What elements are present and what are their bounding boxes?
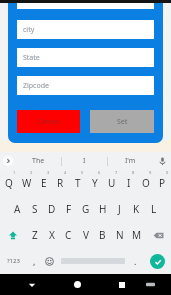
button[interactable]: C [60, 222, 77, 248]
staticText: M [132, 228, 142, 242]
staticText: 0 [166, 170, 169, 175]
staticText: 8 [132, 170, 135, 175]
staticText: O [142, 176, 150, 190]
staticText: 9 [149, 170, 152, 175]
button[interactable]: A [9, 196, 26, 222]
staticText: L [151, 202, 157, 216]
button[interactable]: 7 [103, 170, 120, 196]
staticText: V [83, 228, 89, 242]
staticText: 6 [98, 170, 101, 175]
staticText: B [99, 228, 106, 242]
button[interactable]: Zipcode [17, 76, 154, 95]
button[interactable]: 2 [18, 170, 35, 196]
button[interactable]: State [17, 48, 154, 67]
button[interactable]: 1 [0, 170, 18, 196]
staticText: Cancel [37, 117, 60, 127]
staticText: State [23, 53, 40, 63]
button[interactable]: K [128, 196, 145, 222]
staticText: U [108, 176, 116, 190]
staticText: J [118, 202, 121, 216]
staticText: Set [117, 117, 128, 127]
button[interactable]: M [128, 222, 145, 248]
button[interactable]: Set [90, 110, 154, 133]
staticText: Z [32, 228, 38, 242]
button[interactable]: X [43, 222, 60, 248]
button[interactable]: 0 [154, 170, 171, 196]
button[interactable]: N [111, 222, 128, 248]
staticText: C [65, 228, 72, 242]
button[interactable]: Z [26, 222, 43, 248]
button[interactable]: Space [57, 248, 128, 274]
button[interactable]: Shift [0, 222, 26, 248]
button[interactable]: 5 [69, 170, 86, 196]
button[interactable]: I [62, 152, 107, 170]
button[interactable]: 8 [120, 170, 137, 196]
staticText: 3 [47, 170, 50, 175]
staticText: I [83, 156, 86, 166]
staticText: 7 [115, 170, 118, 175]
button[interactable]: Voice input [153, 152, 171, 170]
button[interactable]: F [60, 196, 77, 222]
staticText: R [57, 176, 64, 190]
button[interactable]: L [145, 196, 162, 222]
staticText: I'm [125, 156, 136, 166]
staticText: X [49, 228, 55, 242]
button[interactable]: Home [63, 274, 91, 295]
button[interactable]: 9 [137, 170, 154, 196]
staticText: Y [92, 176, 98, 190]
button[interactable]: Emoji [42, 248, 57, 274]
staticText: 4 [64, 170, 67, 175]
button[interactable]: H [94, 196, 111, 222]
staticText: 1 [13, 170, 16, 175]
staticText: . [134, 255, 137, 267]
button[interactable]: Expand toolbar [0, 152, 15, 170]
staticText: ?123 [7, 257, 20, 265]
staticText: W [22, 176, 32, 190]
button[interactable]: . [128, 248, 143, 274]
button[interactable]: Cancel [17, 110, 80, 133]
button[interactable]: G [77, 196, 94, 222]
button[interactable]: Enter [143, 248, 171, 274]
staticText: N [116, 228, 124, 242]
staticText: E [41, 176, 47, 190]
button[interactable]: 3 [35, 170, 52, 196]
button[interactable]: Recents [108, 274, 136, 295]
staticText: A [14, 202, 21, 216]
staticText: G [82, 202, 90, 216]
staticText: K [133, 202, 140, 216]
staticText: city [23, 25, 35, 35]
button[interactable]: 6 [86, 170, 103, 196]
button[interactable]: V [77, 222, 94, 248]
button[interactable]: I'm [108, 152, 153, 170]
staticText: D [48, 202, 56, 216]
staticText: F [66, 202, 72, 216]
button[interactable]: The [15, 152, 61, 170]
button[interactable]: , [27, 248, 42, 274]
staticText: The [32, 156, 45, 166]
staticText: , [33, 255, 36, 267]
button[interactable]: J [111, 196, 128, 222]
staticText: 5 [81, 170, 84, 175]
button[interactable]: 4 [52, 170, 69, 196]
staticText: I [127, 176, 131, 190]
staticText: T [75, 176, 81, 190]
staticText: S [32, 202, 38, 216]
staticText: P [159, 176, 166, 190]
button[interactable]: Back [18, 274, 46, 295]
staticText: Zipcode [23, 81, 49, 91]
button[interactable]: B [94, 222, 111, 248]
button[interactable]: city [17, 20, 154, 39]
staticText: 2 [30, 170, 33, 175]
staticText: Q [5, 176, 13, 190]
button[interactable]: S [26, 196, 43, 222]
staticText: H [99, 202, 107, 216]
button[interactable]: ?123 [0, 248, 27, 274]
button[interactable]: Switch keyboard [136, 274, 164, 295]
button[interactable]: Backspace [145, 222, 171, 248]
button[interactable]: D [43, 196, 60, 222]
